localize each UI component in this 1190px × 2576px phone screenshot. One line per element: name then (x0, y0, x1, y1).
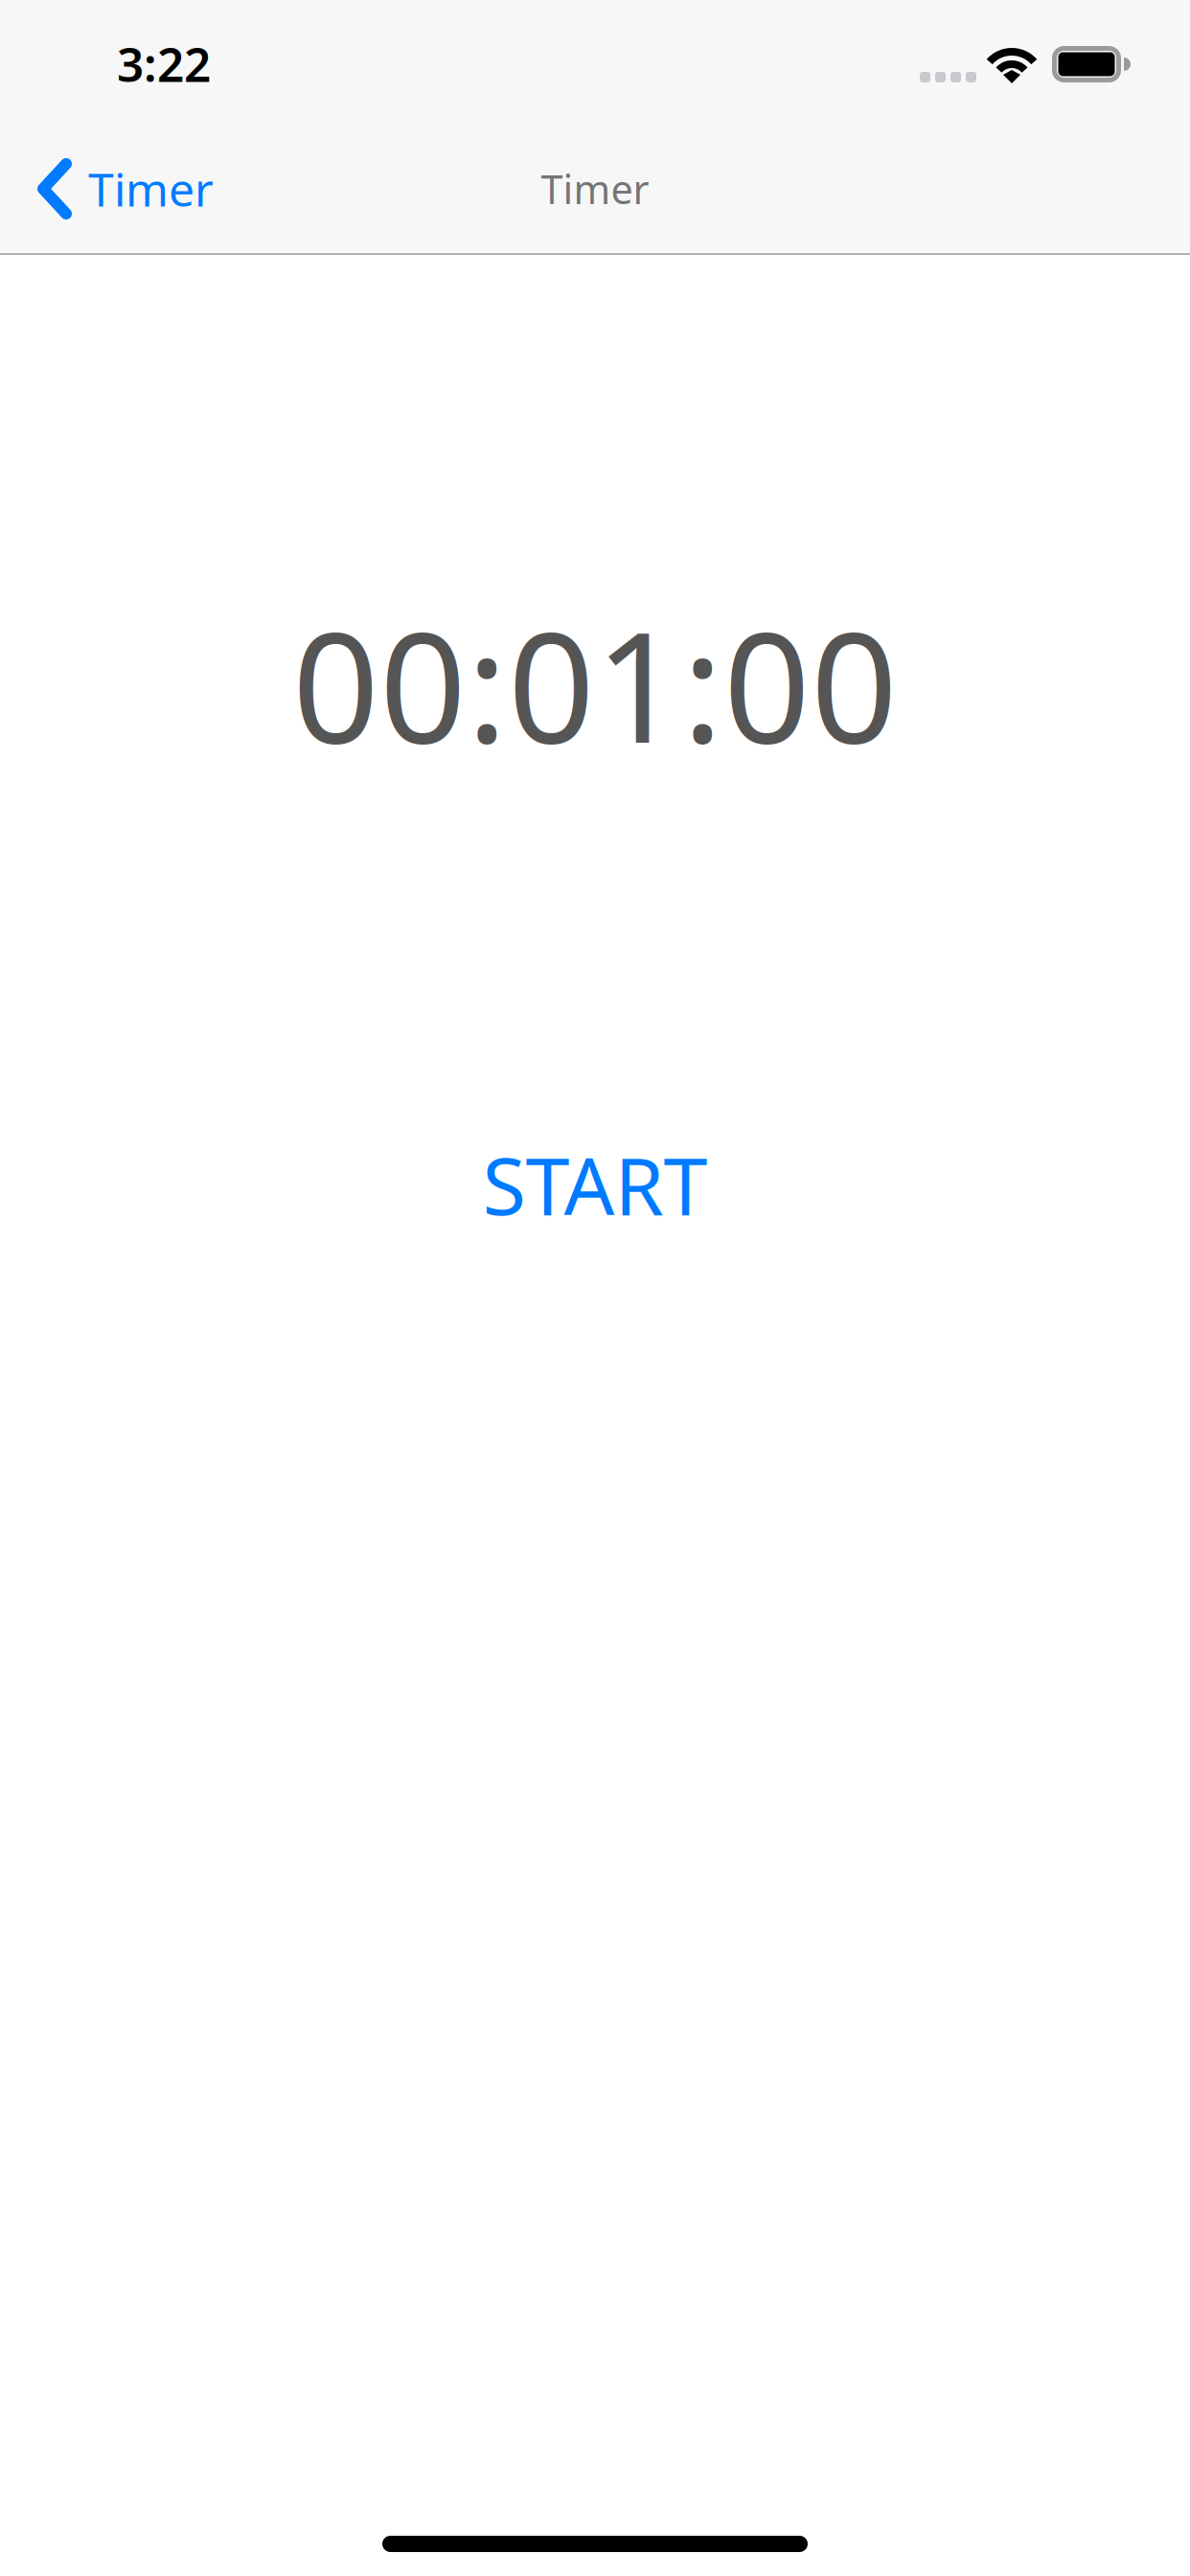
button[interactable]: Timer (0, 126, 237, 252)
staticText: 3:22 (117, 32, 211, 95)
staticText: Timer (541, 163, 649, 215)
staticText: Timer (88, 158, 214, 219)
button[interactable]: START (0, 1142, 1190, 1226)
staticText: 00:01:00 (292, 583, 898, 785)
staticText: START (482, 1132, 708, 1237)
